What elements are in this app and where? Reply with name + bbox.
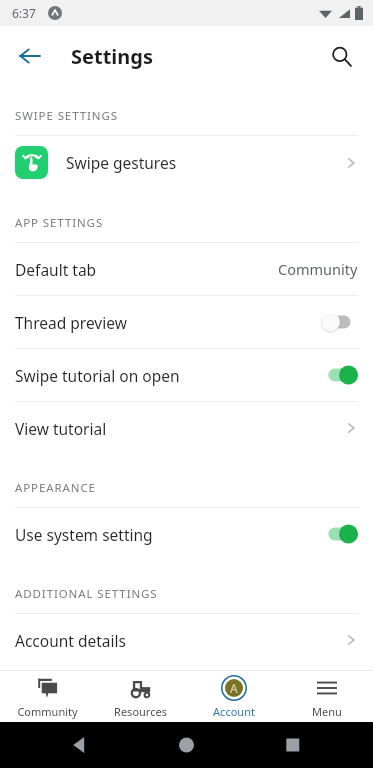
staticText: ADDITIONAL SETTINGS [15, 586, 158, 602]
staticText: Account details [15, 630, 126, 651]
staticText: SWIPE SETTINGS [15, 108, 118, 124]
staticText: Community [17, 704, 78, 719]
staticText: 6:37 [12, 5, 36, 21]
staticText: Thread preview [15, 312, 127, 333]
button[interactable]: Thread preview [0, 296, 373, 348]
staticText: Default tab [15, 259, 97, 280]
staticText: Community [278, 259, 358, 279]
button[interactable]: Use system setting [0, 508, 373, 560]
button[interactable]: A [187, 671, 280, 722]
staticText: Swipe tutorial on open [15, 365, 180, 386]
button[interactable]: View tutorial [0, 402, 373, 454]
staticText: Settings [71, 43, 153, 70]
button[interactable]: Resources [94, 671, 187, 722]
staticText: Swipe gestures [66, 152, 177, 173]
button[interactable]: Default tab [0, 243, 373, 295]
staticText: A [230, 680, 238, 696]
staticText: Resources [114, 704, 167, 719]
staticText: Account [213, 704, 255, 719]
button[interactable]: Community [0, 671, 94, 722]
button[interactable]: Search [317, 32, 365, 80]
staticText: View tutorial [15, 418, 107, 439]
staticText: APPEARANCE [15, 480, 96, 496]
staticText: Use system setting [15, 524, 153, 545]
staticText: Menu [312, 704, 342, 719]
button[interactable]: Menu [280, 671, 373, 722]
button[interactable]: Swipe tutorial on open [0, 349, 373, 401]
staticText: APP SETTINGS [15, 215, 104, 231]
button[interactable]: Back [6, 32, 54, 80]
button[interactable]: Account details [0, 614, 373, 666]
button[interactable]: Swipe gestures [0, 136, 373, 189]
